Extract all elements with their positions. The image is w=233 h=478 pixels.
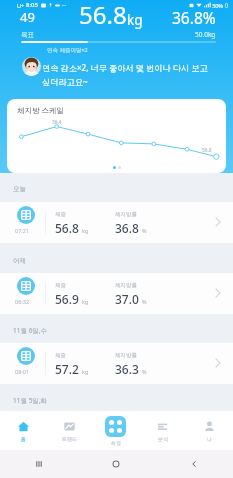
staticText: 30% — [212, 2, 223, 9]
button[interactable]: 07:21 — [0, 202, 233, 243]
staticText: 56.8 — [79, 0, 127, 31]
staticText: 36.4 — [52, 119, 62, 126]
staticText: 체중 — [55, 282, 66, 289]
staticText: 체지방률 — [115, 352, 137, 359]
staticText: 08:01 — [15, 368, 30, 375]
staticText: 홈 — [21, 436, 26, 442]
button[interactable]: Home — [77, 450, 155, 478]
staticText: % — [142, 298, 147, 305]
button[interactable]: Recents — [0, 450, 77, 478]
button[interactable]: 08:01 — [0, 343, 233, 384]
staticText: 체지방률 — [115, 211, 137, 218]
staticText: 목표 — [21, 31, 34, 39]
button[interactable]: 체지방 스케일 — [7, 99, 226, 173]
staticText: 8:05 — [26, 1, 38, 9]
staticText: 06:32 — [15, 298, 30, 305]
button[interactable]: 06:32 — [0, 273, 233, 314]
staticText: 56.9 — [55, 291, 79, 307]
button[interactable]: 홈 — [0, 411, 46, 450]
staticText: 11월 6일,수 — [13, 326, 48, 335]
staticText: U+ — [17, 2, 25, 9]
staticText: 나 — [207, 436, 212, 442]
staticText: 체지방률 — [115, 282, 137, 289]
button[interactable]: Back — [155, 450, 233, 478]
staticText: % — [142, 227, 147, 234]
staticText: 36.3 — [115, 361, 139, 377]
staticText: 연속 감소×2, 너무 좋아서 몇 번이나 다시 보고 — [42, 62, 208, 73]
staticText: 50.0kg — [195, 30, 216, 39]
staticText: kg — [82, 368, 89, 375]
staticText: 싶더라고요~ — [42, 76, 88, 87]
staticText: 57.2 — [55, 361, 79, 377]
staticText: 어제 — [13, 257, 26, 265]
button[interactable]: 나 — [186, 411, 233, 450]
staticText: % — [142, 368, 147, 375]
button[interactable]: 측정 — [92, 411, 139, 450]
staticText: kg — [82, 227, 89, 234]
staticText: 56.8 — [202, 147, 212, 154]
staticText: 11월 5일,화 — [13, 396, 48, 405]
staticText: kg — [82, 298, 89, 305]
staticText: 체중 — [55, 211, 66, 218]
staticText: ··· — [62, 2, 67, 9]
staticText: kg — [127, 11, 143, 29]
staticText: 연속 체중미달×2 — [47, 46, 88, 54]
staticText: 49 — [20, 8, 35, 26]
staticText: 체중 — [55, 352, 66, 359]
staticText: 오늘 — [13, 185, 26, 193]
staticText: 36.8% — [172, 7, 216, 28]
staticText: 36.8 — [115, 220, 139, 236]
staticText: 체지방 스케일 — [17, 105, 64, 115]
staticText: 측정 — [111, 440, 121, 446]
staticText: 트렌드 — [62, 436, 77, 442]
button[interactable]: 분석 — [139, 411, 186, 450]
button[interactable]: 트렌드 — [46, 411, 92, 450]
staticText: 56.8 — [55, 220, 79, 236]
staticText: 37.0 — [115, 291, 139, 307]
staticText: 07:21 — [15, 227, 30, 234]
staticText: 분석 — [158, 436, 168, 442]
